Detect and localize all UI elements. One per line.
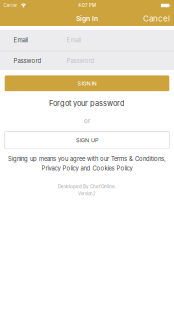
- staticText: Privacy Policy and Cookies Policy: [41, 165, 132, 172]
- staticText: Cancel: [143, 14, 170, 23]
- staticText: 4:07 PM: [78, 3, 96, 8]
- staticText: Forgot your password: [49, 99, 125, 108]
- staticText: Email: [66, 36, 80, 44]
- button[interactable]: Forgot your password: [0, 99, 174, 107]
- staticText: Password: [66, 57, 94, 64]
- staticText: Carrier: [3, 3, 17, 8]
- button[interactable]: SIGN IN: [5, 75, 169, 91]
- staticText: Version 2: [78, 191, 96, 196]
- staticText: SIGN UP: [76, 137, 98, 143]
- button[interactable]: SIGN UP: [5, 131, 169, 149]
- staticText: Password: [13, 57, 41, 64]
- staticText: Signing up means you agree with our Term…: [8, 155, 166, 162]
- staticText: SIGN IN: [77, 80, 96, 87]
- staticText: Email: [13, 36, 27, 44]
- button[interactable]: Cancel: [139, 10, 174, 27]
- staticText: or: [84, 117, 90, 125]
- staticText: Developed By ChefOnline.: [58, 184, 116, 189]
- staticText: Sign In: [76, 14, 98, 23]
